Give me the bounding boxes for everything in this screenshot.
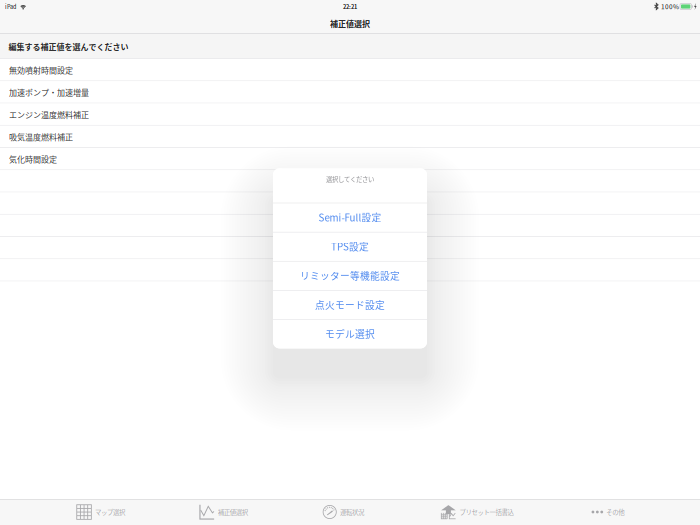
staticText: 補正値選択 — [330, 18, 370, 29]
button[interactable]: 加速ポンプ・加速増量 — [0, 81, 700, 103]
staticText: 点火モード設定 — [315, 298, 385, 312]
staticText: 編集する補正値を選んでください — [9, 41, 129, 52]
staticText: 気化時間設定 — [9, 153, 57, 165]
button[interactable]: TPS設定 — [273, 232, 427, 261]
button[interactable]: 吸気温度燃料補正 — [0, 126, 700, 148]
button[interactable]: 点火モード設定 — [273, 290, 427, 319]
staticText: 無効噴射時間設定 — [9, 64, 73, 76]
staticText: 吸気温度燃料補正 — [9, 131, 73, 143]
button[interactable]: 無効噴射時間設定 — [0, 59, 700, 81]
staticText: マップ選択 — [95, 507, 125, 517]
staticText: 補正値選択 — [218, 507, 248, 517]
staticText: iPad — [5, 2, 16, 10]
button[interactable]: その他 — [589, 499, 627, 525]
staticText: モデル選択 — [325, 327, 375, 341]
staticText: リミッター等機能設定 — [300, 268, 400, 283]
staticText: 100% — [661, 2, 679, 11]
staticText: その他 — [606, 507, 624, 517]
staticText: エンジン温度燃料補正 — [9, 109, 89, 120]
staticText: 22:21 — [343, 2, 357, 10]
staticText: プリセット一括書込 — [459, 507, 513, 517]
button[interactable]: プリセット一括書込 — [437, 499, 517, 525]
staticText: TPS設定 — [331, 239, 369, 253]
button[interactable]: Semi-Full設定 — [273, 203, 427, 232]
button[interactable]: マップ選択 — [76, 499, 126, 525]
button[interactable]: リミッター等機能設定 — [273, 261, 427, 290]
button[interactable]: 補正値選択 — [198, 499, 249, 525]
button[interactable]: モデル選択 — [273, 319, 427, 348]
staticText: 運転状況 — [340, 507, 364, 517]
button[interactable]: 運転状況 — [322, 499, 365, 525]
staticText: 選択してください — [326, 174, 374, 184]
staticText: 加速ポンプ・加速増量 — [9, 87, 89, 98]
button[interactable]: エンジン温度燃料補正 — [0, 103, 700, 126]
staticText: Semi-Full設定 — [318, 210, 381, 224]
button[interactable]: 気化時間設定 — [0, 148, 700, 170]
